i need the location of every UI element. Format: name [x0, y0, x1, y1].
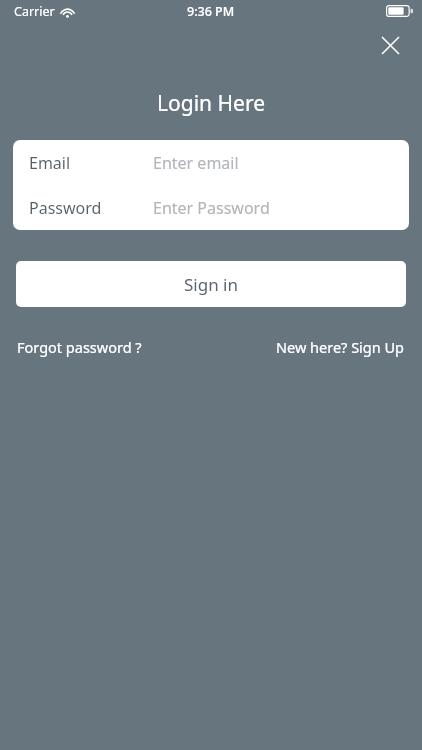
button[interactable]: Password: [13, 185, 409, 230]
staticText: Enter Password: [153, 197, 270, 219]
staticText: Password: [29, 197, 102, 219]
button[interactable]: Sign in: [16, 261, 406, 307]
staticText: New here? Sign Up: [276, 337, 405, 357]
staticText: Email: [29, 152, 71, 174]
staticText: Carrier: [14, 3, 55, 20]
staticText: 9:36 PM: [187, 3, 235, 20]
staticText: Login Here: [0, 89, 422, 118]
staticText: Enter email: [153, 152, 239, 174]
button[interactable]: Forgot password ?: [17, 337, 142, 357]
button[interactable]: Close: [374, 29, 406, 61]
button[interactable]: Email: [13, 140, 409, 185]
staticText: Forgot password ?: [17, 337, 142, 357]
button[interactable]: New here? Sign Up: [276, 337, 405, 357]
staticText: Sign in: [184, 273, 238, 296]
